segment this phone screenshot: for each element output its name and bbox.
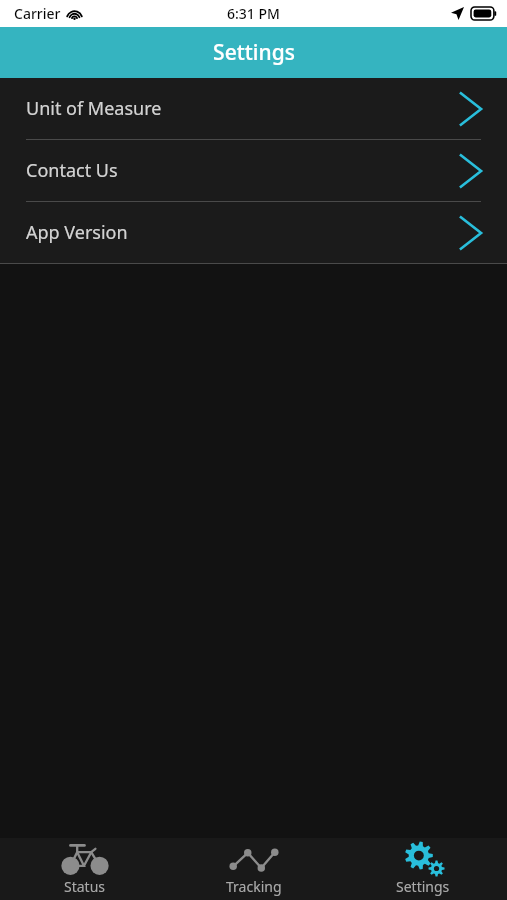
staticText: Settings <box>396 877 450 896</box>
staticText: Contact Us <box>26 158 118 183</box>
button[interactable]: Tracking <box>169 838 338 900</box>
staticText: Settings <box>213 38 295 67</box>
staticText: 6:31 PM <box>227 4 280 23</box>
staticText: App Version <box>26 220 128 245</box>
staticText: Status <box>64 877 106 896</box>
button[interactable]: Contact Us <box>0 140 507 201</box>
button[interactable]: Status <box>0 838 169 900</box>
staticText: Carrier <box>14 4 61 23</box>
button[interactable]: Unit of Measure <box>0 78 507 139</box>
button[interactable]: App Version <box>0 202 507 263</box>
staticText: Tracking <box>226 877 282 896</box>
button[interactable]: Settings <box>338 838 507 900</box>
staticText: Unit of Measure <box>26 96 162 121</box>
